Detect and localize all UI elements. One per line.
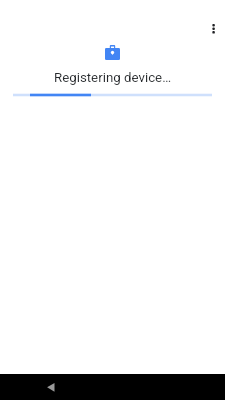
button[interactable]: Back: [39, 375, 63, 399]
button[interactable]: More options: [201, 16, 225, 40]
staticText: Registering device…: [0, 70, 225, 86]
